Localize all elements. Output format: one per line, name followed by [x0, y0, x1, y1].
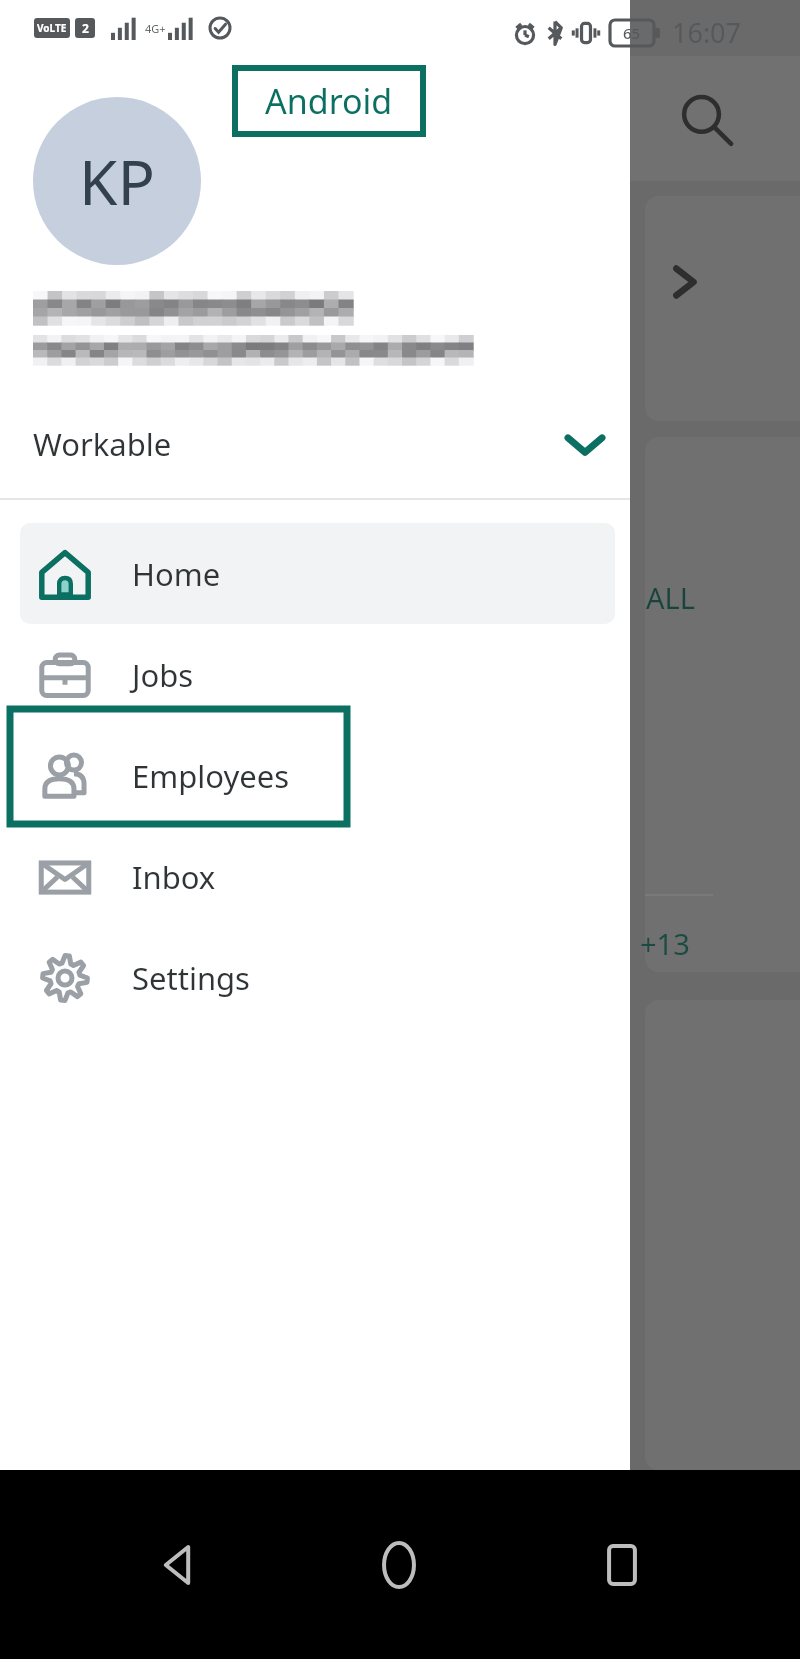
button[interactable]: Search [676, 90, 734, 148]
button[interactable]: Settings [0, 927, 630, 1028]
button[interactable]: Home [354, 1520, 444, 1610]
button[interactable]: Jobs [0, 624, 630, 725]
staticText: VoLTE [37, 21, 67, 35]
button[interactable]: Employees [0, 725, 630, 826]
button[interactable]: Back [132, 1520, 222, 1610]
staticText: Settings [132, 957, 250, 999]
staticText: 65 [623, 23, 641, 43]
staticText: 4G+ [145, 21, 166, 36]
button[interactable] [645, 196, 800, 421]
button[interactable]: Inbox [0, 826, 630, 927]
staticText: 16:07 [672, 14, 742, 51]
button[interactable]: Home [20, 523, 615, 624]
button[interactable]: Workable [0, 413, 630, 475]
staticText: Home [132, 553, 221, 595]
staticText: 2 [82, 20, 89, 36]
staticText: Jobs [132, 654, 194, 696]
staticText: Inbox [132, 856, 216, 898]
staticText: Workable [33, 423, 172, 465]
staticText: ALL [646, 578, 695, 617]
staticText: Android [265, 78, 393, 124]
staticText: +13 [640, 924, 690, 963]
button[interactable]: Recents [577, 1520, 667, 1610]
staticText: KP [79, 139, 155, 223]
button[interactable] [645, 437, 800, 972]
staticText: Employees [132, 755, 290, 797]
button[interactable]: KP [33, 97, 201, 265]
